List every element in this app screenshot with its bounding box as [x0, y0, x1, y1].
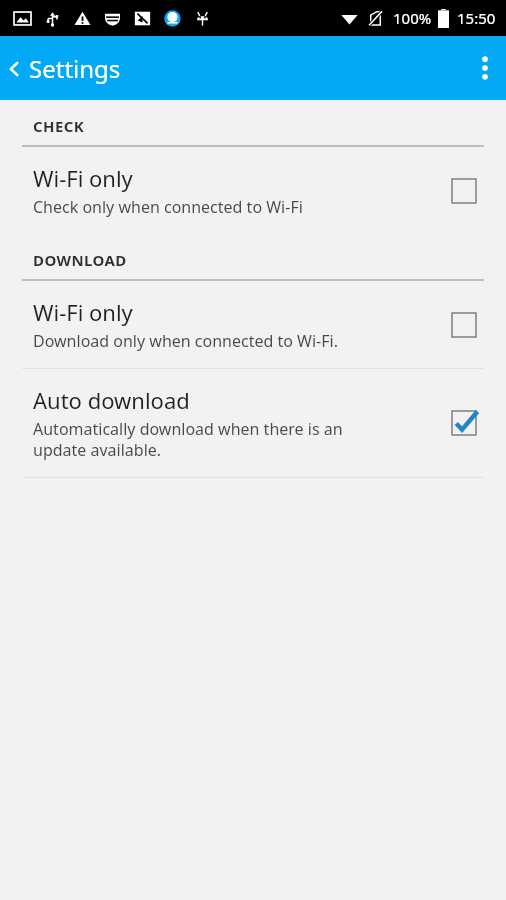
staticText: DOWNLOAD — [33, 250, 127, 270]
button[interactable]: Auto download — [0, 369, 506, 477]
staticText: Download only when connected to Wi-Fi. — [33, 330, 338, 352]
button[interactable]: Back — [0, 46, 133, 91]
staticText: Check only when connected to Wi-Fi — [33, 196, 303, 218]
other: Back — [4, 59, 24, 79]
staticText: Settings — [29, 52, 121, 85]
button[interactable]: Wi-Fi only — [0, 147, 506, 234]
staticText: Wi-Fi only — [33, 163, 133, 193]
staticText: 100% — [393, 8, 432, 28]
staticText: Wi-Fi only — [33, 297, 133, 327]
button[interactable]: More options — [464, 43, 506, 93]
staticText: Auto download — [33, 385, 190, 415]
staticText: 15:50 — [457, 8, 496, 28]
button[interactable]: Wi-Fi only — [0, 281, 506, 368]
staticText: CHECK — [33, 116, 85, 136]
staticText: Automatically download when there is an … — [33, 418, 343, 461]
